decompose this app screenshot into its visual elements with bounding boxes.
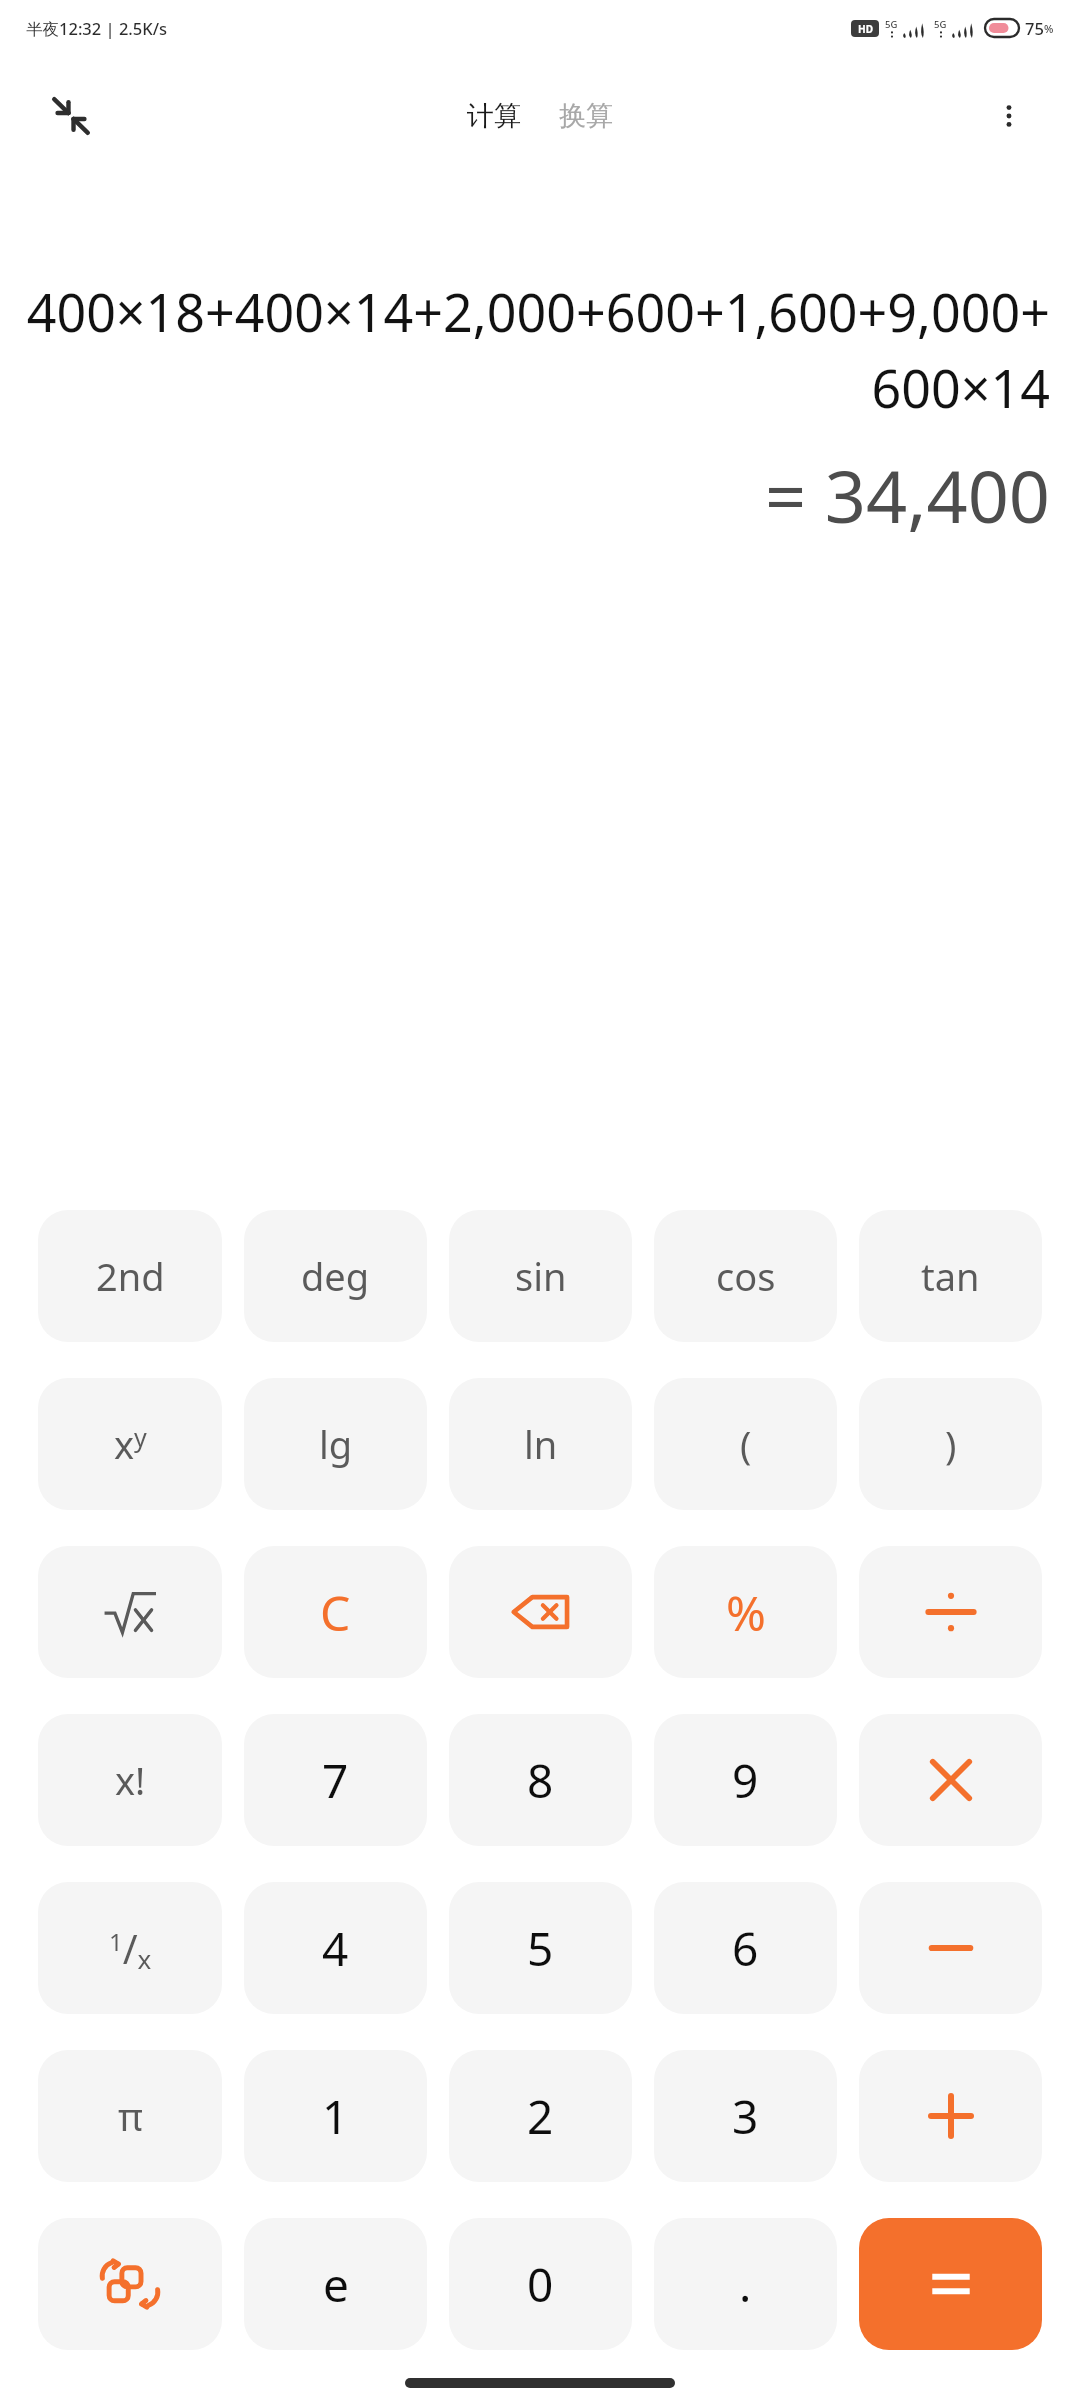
button[interactable]: lg (244, 1378, 427, 1510)
button[interactable]: C (244, 1546, 427, 1678)
button[interactable]: x! (38, 1714, 222, 1846)
button[interactable]: sin (449, 1210, 632, 1342)
button[interactable]: Backspace (449, 1546, 632, 1678)
button[interactable]: 5 (449, 1882, 632, 2014)
button[interactable]: 7 (244, 1714, 427, 1846)
button[interactable]: ( (654, 1378, 837, 1510)
button[interactable]: π (38, 2050, 222, 2182)
staticText: 400×18+400×14+2,000+600+1,600+9,000+600×… (0, 276, 1050, 424)
staticText: 0 (527, 2253, 554, 2316)
staticText: tan (921, 1250, 980, 1302)
staticText: 8 (527, 1749, 554, 1812)
staticText: % (726, 1580, 766, 1645)
staticText: 5 (527, 1917, 554, 1980)
staticText: 6 (732, 1917, 759, 1980)
button[interactable]: Square root (38, 1546, 222, 1678)
staticText: 5G (885, 18, 898, 31)
button[interactable]: e (244, 2218, 427, 2350)
staticText: π (118, 2090, 143, 2142)
button[interactable]: ) (859, 1378, 1042, 1510)
button[interactable]: tan (859, 1210, 1042, 1342)
staticText: lg (319, 1418, 353, 1470)
button[interactable]: 8 (449, 1714, 632, 1846)
staticText: 1 (322, 2085, 349, 2148)
button[interactable]: Multiply (859, 1714, 1042, 1846)
button[interactable]: cos (654, 1210, 837, 1342)
button[interactable]: Collapse (38, 83, 104, 149)
staticText: sin (515, 1250, 567, 1302)
staticText: C (320, 1580, 351, 1645)
button[interactable]: Minus (859, 1882, 1042, 2014)
button[interactable]: Divide (859, 1546, 1042, 1678)
staticText: HD (858, 22, 873, 36)
button[interactable]: 计算 (459, 95, 529, 137)
staticText: 3 (732, 2085, 759, 2148)
button[interactable]: Plus (859, 2050, 1042, 2182)
staticText: . (739, 2253, 752, 2316)
button[interactable]: 换算 (551, 95, 621, 137)
staticText: 2nd (96, 1250, 165, 1302)
staticText: ) (945, 1418, 957, 1470)
staticText: 5G (934, 18, 947, 31)
staticText: e (323, 2253, 349, 2316)
button[interactable]: Equals (859, 2218, 1042, 2350)
staticText: = 34,400 (0, 446, 1050, 544)
staticText: % (1044, 21, 1054, 36)
button[interactable]: More options (976, 83, 1042, 149)
staticText: xy (114, 1418, 147, 1470)
button[interactable]: 2nd (38, 1210, 222, 1342)
button[interactable]: ln (449, 1378, 632, 1510)
staticText: 半夜12:32 | 2.5K/s (26, 17, 168, 40)
button[interactable]: 2 (449, 2050, 632, 2182)
button[interactable]: 0 (449, 2218, 632, 2350)
button[interactable]: 3 (654, 2050, 837, 2182)
button[interactable]: Convert (38, 2218, 222, 2350)
button[interactable]: deg (244, 1210, 427, 1342)
button[interactable]: . (654, 2218, 837, 2350)
staticText: cos (716, 1250, 776, 1302)
button[interactable]: xy (38, 1378, 222, 1510)
button[interactable]: 6 (654, 1882, 837, 2014)
button[interactable]: % (654, 1546, 837, 1678)
button[interactable]: 1 (244, 2050, 427, 2182)
button[interactable]: 4 (244, 1882, 427, 2014)
staticText: ( (740, 1418, 752, 1470)
staticText: 7 (322, 1749, 349, 1812)
staticText: 9 (732, 1749, 759, 1812)
staticText: x! (115, 1754, 146, 1806)
staticText: 1/x (109, 1921, 152, 1976)
staticText: 2 (527, 2085, 554, 2148)
staticText: 4 (322, 1917, 349, 1980)
staticText: ln (524, 1418, 558, 1470)
staticText: 计算 (467, 99, 521, 133)
button[interactable]: 9 (654, 1714, 837, 1846)
staticText: 换算 (559, 99, 613, 133)
staticText: deg (301, 1250, 370, 1302)
button[interactable]: One over x (38, 1882, 222, 2014)
staticText: 75 (1025, 17, 1044, 39)
